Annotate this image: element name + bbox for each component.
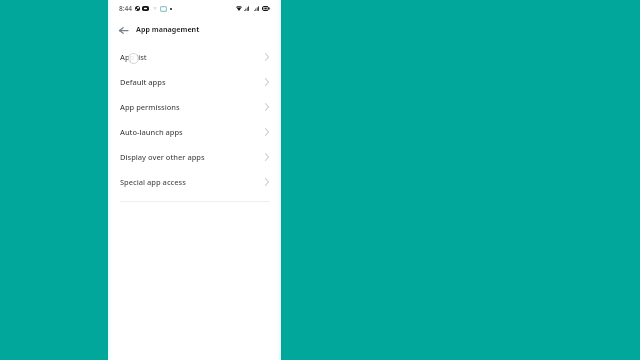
button[interactable]: Special app access [108, 169, 281, 194]
staticText: Default apps [120, 77, 166, 87]
button[interactable]: Auto-launch apps [108, 119, 281, 144]
button[interactable]: Display over other apps [108, 144, 281, 169]
button[interactable]: App list [108, 44, 281, 69]
button[interactable]: App permissions [108, 94, 281, 119]
staticText: 8:44 [119, 4, 133, 13]
button[interactable]: Default apps [108, 69, 281, 94]
staticText: Display over other apps [120, 152, 205, 162]
staticText: App permissions [120, 102, 180, 112]
button[interactable]: Back [114, 20, 133, 39]
staticText: Special app access [120, 177, 186, 187]
staticText: App management [136, 24, 200, 34]
staticText: Auto-launch apps [120, 127, 183, 137]
staticText: App list [120, 52, 147, 62]
